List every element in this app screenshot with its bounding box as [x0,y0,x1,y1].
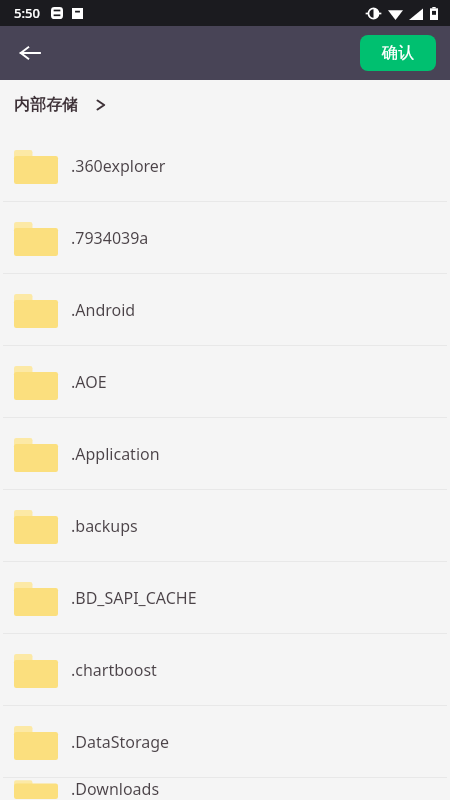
button[interactable]: .Downloads [0,778,450,800]
staticText: 5:50 [14,4,40,22]
staticText: 内部存储 [14,95,78,115]
button[interactable]: 内部存储 [14,95,106,115]
staticText: .DataStorage [71,731,170,753]
button[interactable]: .DataStorage [0,706,450,777]
button[interactable]: .AOE [0,346,450,417]
button[interactable]: .360explorer [0,130,450,201]
staticText: .BD_SAPI_CACHE [71,587,197,609]
staticText: .Downloads [71,778,160,800]
staticText: .Application [71,443,160,465]
staticText: .Android [71,299,136,321]
button[interactable]: .backups [0,490,450,561]
staticText: .backups [71,515,138,537]
staticText: 确认 [382,43,414,63]
staticText: .chartboost [71,659,157,681]
staticText: .360explorer [71,155,166,177]
button[interactable]: 确认 [360,35,436,71]
button[interactable]: .BD_SAPI_CACHE [0,562,450,633]
button[interactable]: .Android [0,274,450,345]
button[interactable]: Back [8,31,52,75]
staticText: .7934039a [71,227,149,249]
button[interactable]: .Application [0,418,450,489]
staticText: .AOE [71,371,107,393]
button[interactable]: .chartboost [0,634,450,705]
button[interactable]: .7934039a [0,202,450,273]
